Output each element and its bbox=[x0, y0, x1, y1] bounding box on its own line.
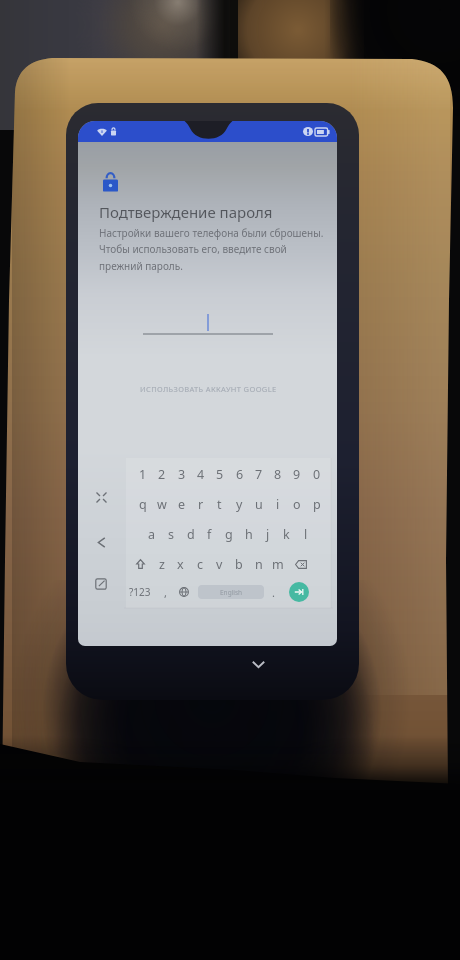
button[interactable]: v bbox=[210, 551, 229, 577]
button[interactable]: ?123 bbox=[124, 579, 156, 605]
button[interactable]: 8 bbox=[268, 461, 287, 487]
button[interactable]: a bbox=[142, 521, 161, 547]
button[interactable]: c bbox=[191, 551, 210, 577]
staticText: 1 bbox=[139, 466, 147, 483]
button[interactable]: 5 bbox=[210, 461, 229, 487]
staticText: 7 bbox=[255, 466, 263, 483]
staticText: e bbox=[178, 496, 186, 513]
button[interactable]: e bbox=[172, 491, 191, 517]
staticText: 5 bbox=[216, 466, 224, 483]
button[interactable]: q bbox=[133, 491, 152, 517]
staticText: l bbox=[304, 526, 308, 543]
staticText: , bbox=[164, 585, 167, 600]
staticText: r bbox=[198, 496, 204, 513]
staticText: Подтверждение пароля bbox=[99, 202, 273, 222]
button[interactable]: ИСПОЛЬЗОВАТЬ АККАУНТ GOOGLE bbox=[128, 381, 288, 397]
staticText: k bbox=[283, 526, 290, 543]
button[interactable]: w bbox=[152, 491, 171, 517]
staticText: u bbox=[255, 496, 263, 513]
staticText: g bbox=[225, 526, 233, 543]
button[interactable]: i bbox=[268, 491, 287, 517]
button[interactable]: 0 bbox=[307, 461, 326, 487]
staticText: 8 bbox=[274, 466, 282, 483]
staticText: 2 bbox=[158, 466, 166, 483]
button[interactable]: r bbox=[191, 491, 210, 517]
button[interactable]: 2 bbox=[152, 461, 171, 487]
staticText: 9 bbox=[293, 466, 301, 483]
button[interactable]: Hide keyboard bbox=[245, 655, 271, 673]
button[interactable]: n bbox=[249, 551, 268, 577]
staticText: v bbox=[216, 556, 223, 573]
staticText: Настройки вашего телефона были сброшены.… bbox=[99, 226, 324, 273]
button[interactable]: 9 bbox=[287, 461, 306, 487]
button[interactable]: 7 bbox=[249, 461, 268, 487]
staticText: j bbox=[266, 526, 270, 543]
button[interactable]: f bbox=[200, 521, 219, 547]
staticText: h bbox=[245, 526, 253, 543]
staticText: a bbox=[148, 526, 156, 543]
staticText: y bbox=[236, 496, 243, 513]
staticText: s bbox=[168, 526, 174, 543]
button[interactable]: p bbox=[307, 491, 326, 517]
button[interactable]: b bbox=[229, 551, 248, 577]
button[interactable]: , bbox=[158, 579, 172, 605]
staticText: 0 bbox=[313, 466, 321, 483]
button[interactable]: s bbox=[161, 521, 180, 547]
button[interactable]: j bbox=[258, 521, 277, 547]
staticText: i bbox=[276, 496, 280, 513]
button[interactable]: g bbox=[219, 521, 238, 547]
button[interactable]: 3 bbox=[172, 461, 191, 487]
button[interactable]: . bbox=[267, 579, 280, 605]
button[interactable]: English bbox=[198, 585, 264, 599]
button[interactable]: Back bbox=[90, 531, 112, 553]
staticText: 4 bbox=[197, 466, 205, 483]
staticText: d bbox=[187, 526, 195, 543]
button[interactable]: z bbox=[152, 551, 171, 577]
button[interactable]: d bbox=[181, 521, 200, 547]
button[interactable]: x bbox=[171, 551, 190, 577]
button[interactable]: Resize keyboard bbox=[90, 486, 112, 508]
staticText: z bbox=[159, 556, 165, 573]
button[interactable]: Change language bbox=[175, 579, 193, 605]
button[interactable]: y bbox=[230, 491, 249, 517]
staticText: q bbox=[139, 496, 147, 513]
staticText: b bbox=[235, 556, 243, 573]
staticText: 6 bbox=[236, 466, 244, 483]
staticText: c bbox=[197, 556, 204, 573]
staticText: x bbox=[177, 556, 184, 573]
button[interactable] bbox=[133, 311, 283, 341]
staticText: o bbox=[293, 496, 301, 513]
button[interactable]: Clipboard bbox=[90, 573, 112, 595]
staticText: ?123 bbox=[129, 585, 151, 599]
staticText: n bbox=[255, 556, 263, 573]
staticText: p bbox=[313, 496, 321, 513]
staticText: 3 bbox=[178, 466, 186, 483]
button[interactable]: h bbox=[239, 521, 258, 547]
button[interactable]: Shift bbox=[130, 551, 150, 577]
button[interactable]: 1 bbox=[133, 461, 152, 487]
button[interactable]: m bbox=[268, 551, 287, 577]
button[interactable]: u bbox=[249, 491, 268, 517]
staticText: English bbox=[220, 588, 243, 597]
button[interactable]: 6 bbox=[230, 461, 249, 487]
button[interactable]: t bbox=[210, 491, 229, 517]
staticText: . bbox=[272, 585, 275, 600]
button[interactable]: k bbox=[277, 521, 296, 547]
button[interactable]: Enter bbox=[283, 579, 315, 605]
staticText: f bbox=[207, 526, 212, 543]
button[interactable]: l bbox=[296, 521, 315, 547]
staticText: t bbox=[217, 496, 222, 513]
button[interactable]: 4 bbox=[191, 461, 210, 487]
staticText: m bbox=[272, 556, 284, 573]
staticText: ИСПОЛЬЗОВАТЬ АККАУНТ GOOGLE bbox=[140, 384, 277, 394]
button[interactable]: o bbox=[287, 491, 306, 517]
button[interactable]: Backspace bbox=[290, 551, 312, 577]
staticText: w bbox=[157, 496, 167, 513]
